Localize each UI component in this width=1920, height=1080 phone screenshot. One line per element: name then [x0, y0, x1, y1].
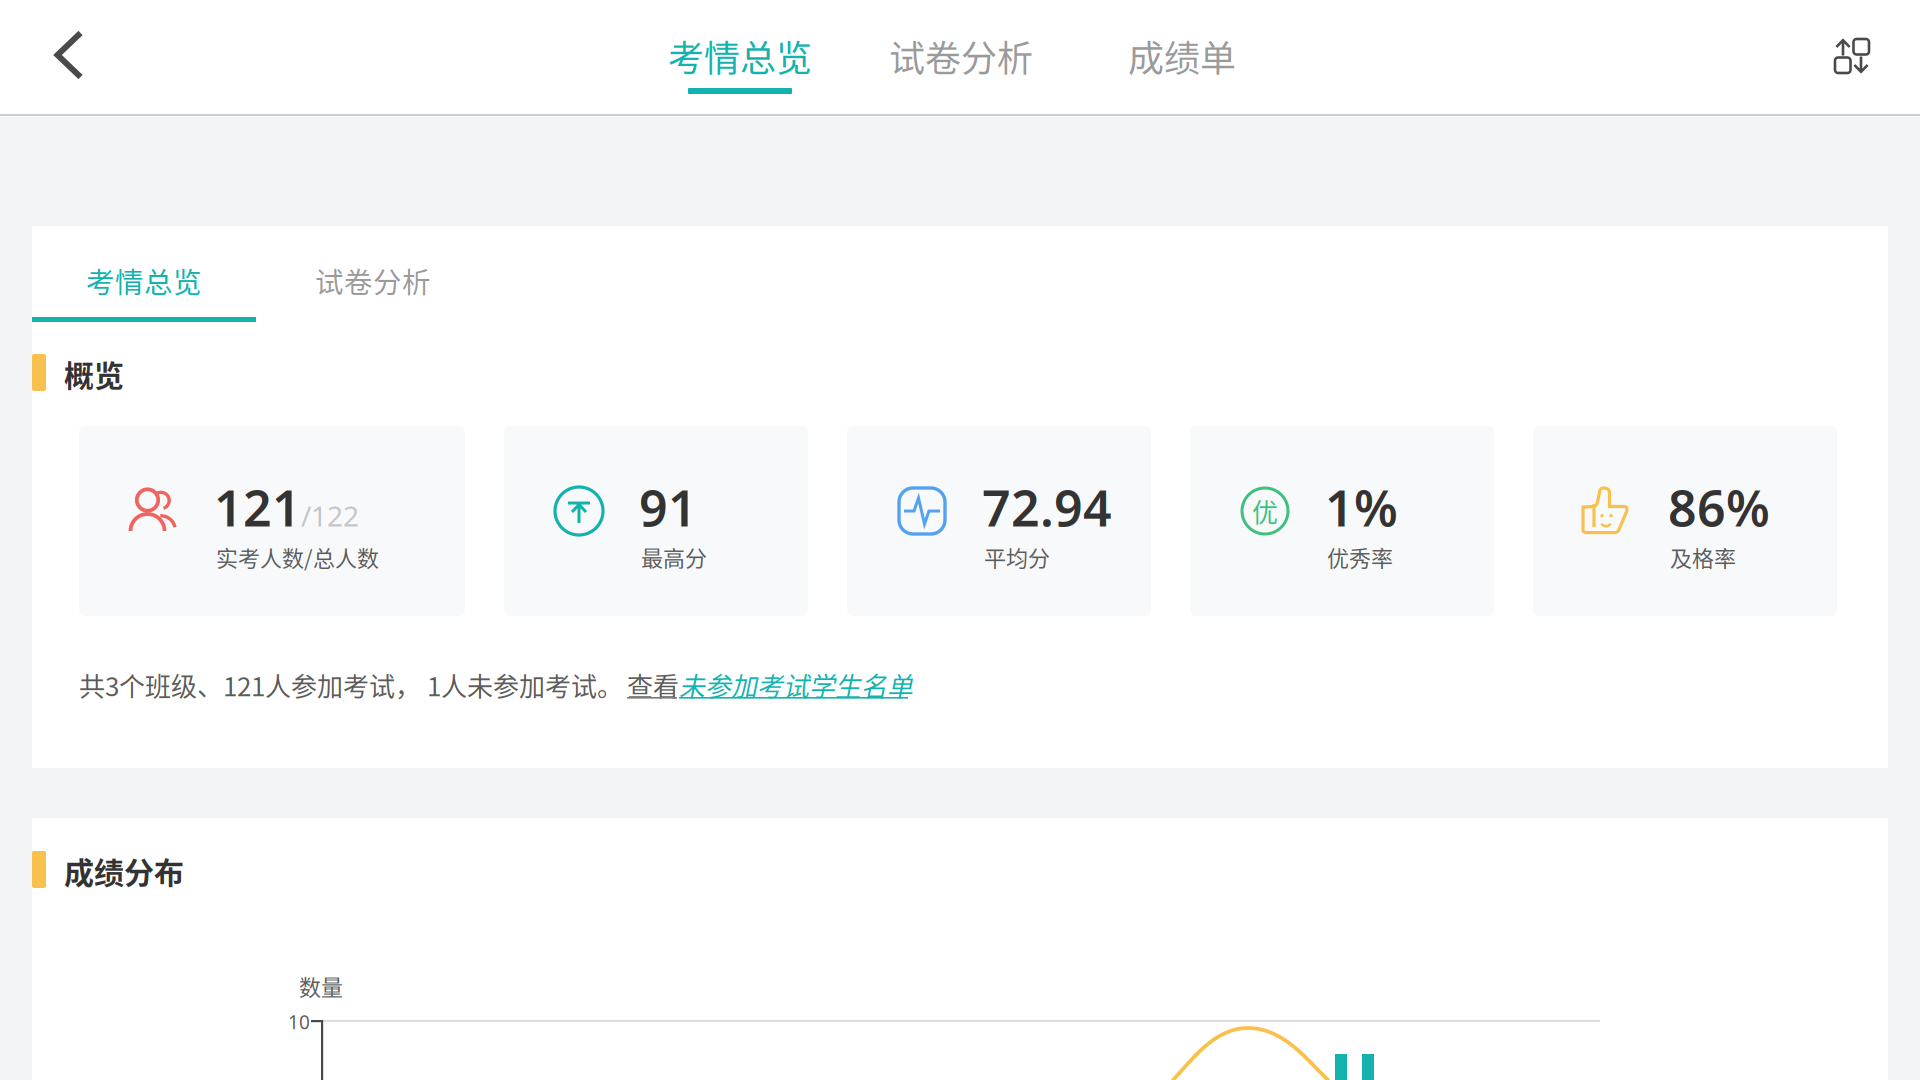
staticText: 72.94: [982, 473, 1112, 541]
button[interactable]: Switch exam: [1788, 0, 1898, 114]
staticText: 成绩分布: [64, 849, 184, 892]
staticText: 91: [639, 473, 697, 541]
staticText: 1%: [1325, 473, 1398, 541]
staticText: 共3个班级、121人参加考试， 1人未参加考试。: [79, 666, 623, 704]
button[interactable]: 试卷分析: [861, 0, 1061, 114]
staticText: 考情总览: [86, 260, 202, 301]
button[interactable]: Back: [6, 0, 124, 114]
staticText: 未参加考试学生名单: [679, 666, 913, 704]
staticText: 平均分: [984, 541, 1050, 573]
staticText: 试卷分析: [889, 30, 1033, 82]
staticText: 优秀率: [1327, 541, 1393, 573]
button[interactable]: 查看: [627, 666, 907, 710]
staticText: 121: [214, 473, 301, 541]
staticText: 成绩单: [1128, 30, 1236, 82]
staticText: 数量: [299, 970, 343, 1002]
staticText: 优: [1252, 492, 1278, 530]
staticText: 考情总览: [668, 30, 812, 82]
staticText: 10: [288, 1009, 310, 1035]
button[interactable]: 试卷分析: [261, 226, 485, 322]
staticText: 实考人数/总人数: [216, 541, 379, 573]
staticText: 试卷分析: [315, 260, 431, 301]
staticText: 86%: [1668, 473, 1770, 541]
staticText: 及格率: [1670, 541, 1736, 573]
staticText: 最高分: [641, 541, 707, 573]
staticText: 查看: [627, 666, 679, 704]
button[interactable]: 考情总览: [32, 226, 256, 322]
button[interactable]: 考情总览: [640, 0, 840, 114]
staticText: 概览: [64, 352, 124, 395]
staticText: /122: [301, 496, 359, 535]
button[interactable]: 成绩单: [1082, 0, 1282, 114]
